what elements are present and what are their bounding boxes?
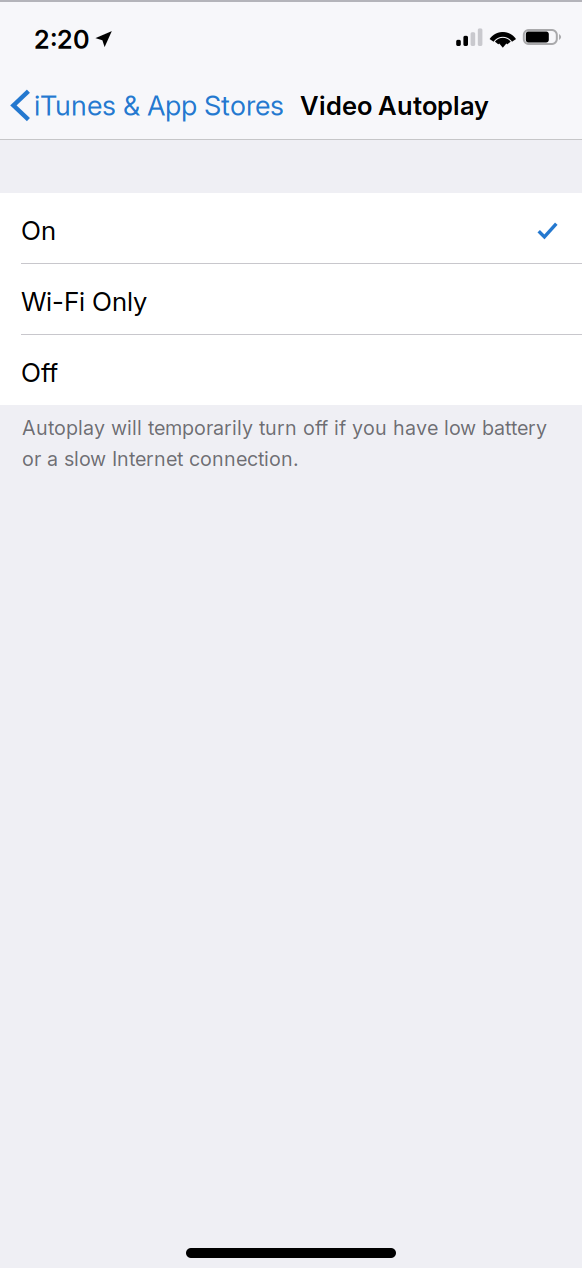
staticText: 2:20 [34, 24, 90, 55]
button[interactable]: Wi-Fi Only [0, 264, 582, 334]
staticText: On [21, 215, 56, 246]
staticText: Video Autoplay [300, 90, 489, 121]
staticText: or a slow Internet connection. [22, 447, 299, 471]
button[interactable]: On [0, 193, 582, 263]
staticText: Autoplay will temporarily turn off if yo… [22, 416, 547, 440]
staticText: Off [21, 357, 58, 388]
staticText: Wi-Fi Only [21, 286, 147, 317]
button[interactable]: Off [0, 335, 582, 405]
staticText: iTunes & App Stores [34, 89, 284, 122]
button[interactable]: Back to iTunes & App Stores [0, 74, 290, 136]
